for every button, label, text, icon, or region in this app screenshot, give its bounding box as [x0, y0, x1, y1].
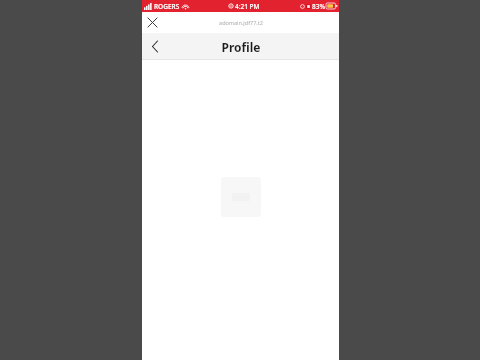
staticText: Profile: [221, 39, 261, 55]
staticText: adomain.jdf77.t2: [219, 19, 263, 26]
staticText: 4:21 PM: [235, 2, 260, 11]
button[interactable]: Back: [142, 33, 168, 60]
staticText: 83%: [312, 2, 325, 11]
button[interactable]: Close: [142, 12, 163, 33]
staticText: ROGERS: [154, 2, 180, 11]
